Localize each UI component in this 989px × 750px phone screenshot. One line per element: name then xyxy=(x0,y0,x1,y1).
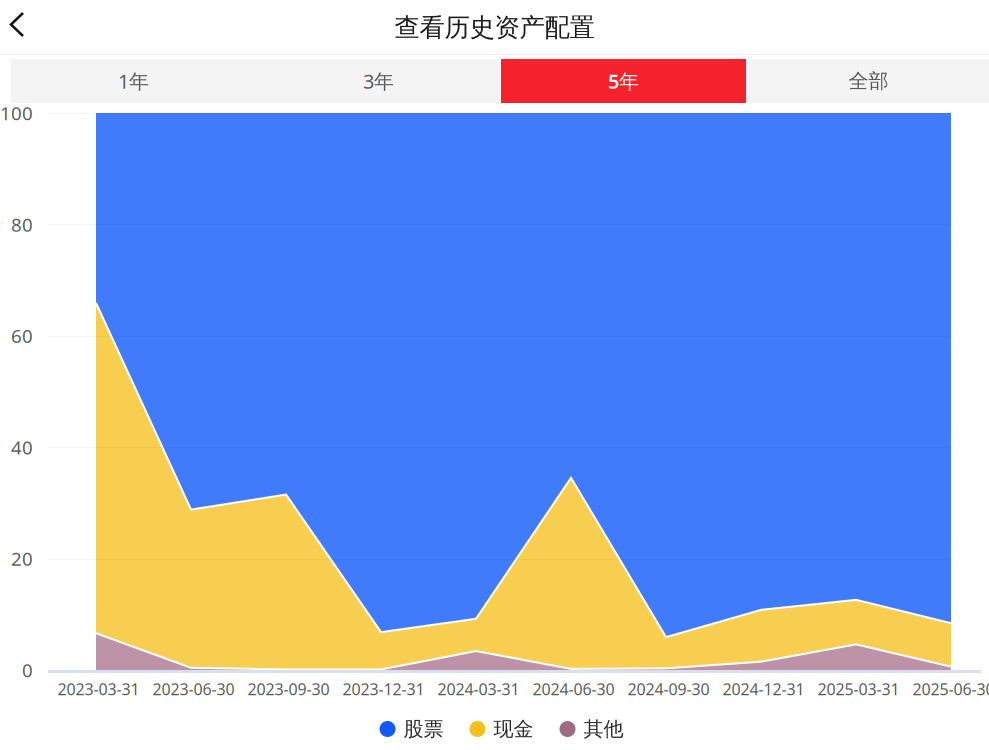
staticText: 股票 xyxy=(403,717,443,741)
staticText: 20 xyxy=(11,546,33,571)
staticText: 80 xyxy=(11,212,33,237)
button[interactable]: 1年 xyxy=(11,59,256,103)
staticText: 2023-12-31 xyxy=(342,678,424,700)
button[interactable]: 5年 xyxy=(501,59,746,103)
staticText: 2025-03-31 xyxy=(817,678,899,700)
staticText: 3年 xyxy=(363,68,394,94)
button[interactable]: 全部 xyxy=(746,59,989,103)
staticText: 2025-06-30 xyxy=(912,678,989,700)
staticText: 2024-06-30 xyxy=(532,678,614,700)
staticText: 2023-03-31 xyxy=(57,678,139,700)
staticText: 100 xyxy=(0,101,33,125)
staticText: 其他 xyxy=(583,717,623,741)
staticText: 5年 xyxy=(608,68,639,94)
staticText: 现金 xyxy=(493,717,533,741)
staticText: 0 xyxy=(22,658,33,682)
button[interactable]: 3年 xyxy=(256,59,501,103)
staticText: 1年 xyxy=(118,68,149,94)
staticText: 查看历史资产配置 xyxy=(394,12,594,43)
staticText: 2023-09-30 xyxy=(247,678,329,700)
staticText: 2023-06-30 xyxy=(152,678,234,700)
staticText: 60 xyxy=(11,323,33,348)
staticText: 2024-09-30 xyxy=(627,678,709,700)
staticText: 2024-12-31 xyxy=(722,678,804,700)
staticText: 40 xyxy=(11,435,33,460)
button[interactable]: Back xyxy=(0,1,49,54)
staticText: 全部 xyxy=(848,69,888,93)
staticText: 2024-03-31 xyxy=(437,678,519,700)
